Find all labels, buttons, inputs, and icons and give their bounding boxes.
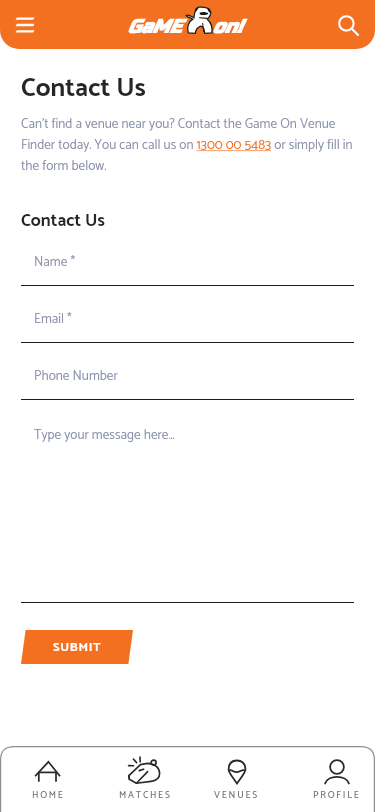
- button[interactable]: Email *: [21, 286, 354, 343]
- button[interactable]: VENUES: [192, 746, 282, 812]
- button[interactable]: Search: [328, 5, 368, 45]
- button[interactable]: Menu: [5, 5, 45, 45]
- button[interactable]: Name *: [21, 236, 354, 286]
- button[interactable]: Phone Number: [21, 343, 354, 400]
- button[interactable]: SUBMIT: [21, 630, 133, 664]
- staticText: VENUES: [214, 788, 260, 804]
- staticText: MATCHES: [119, 788, 172, 804]
- staticText: Phone Number: [34, 365, 118, 387]
- staticText: PROFILE: [313, 788, 361, 804]
- staticText: Email *: [34, 308, 72, 330]
- button[interactable]: MATCHES: [100, 746, 190, 812]
- staticText: Name *: [34, 251, 76, 273]
- staticText: Type your message here…: [34, 424, 175, 446]
- staticText: on!: [212, 15, 242, 38]
- staticText: Contact Us: [21, 67, 146, 110]
- button[interactable]: PROFILE: [292, 746, 375, 812]
- staticText: Contact Us: [21, 207, 105, 236]
- button[interactable]: HOME: [3, 746, 93, 812]
- staticText: Can't find a venue near you? Contact the…: [21, 113, 354, 177]
- staticText: SUBMIT: [53, 637, 102, 658]
- staticText: GaME: [127, 15, 181, 38]
- staticText: HOME: [32, 788, 65, 804]
- button[interactable]: Type your message here…: [21, 400, 354, 603]
